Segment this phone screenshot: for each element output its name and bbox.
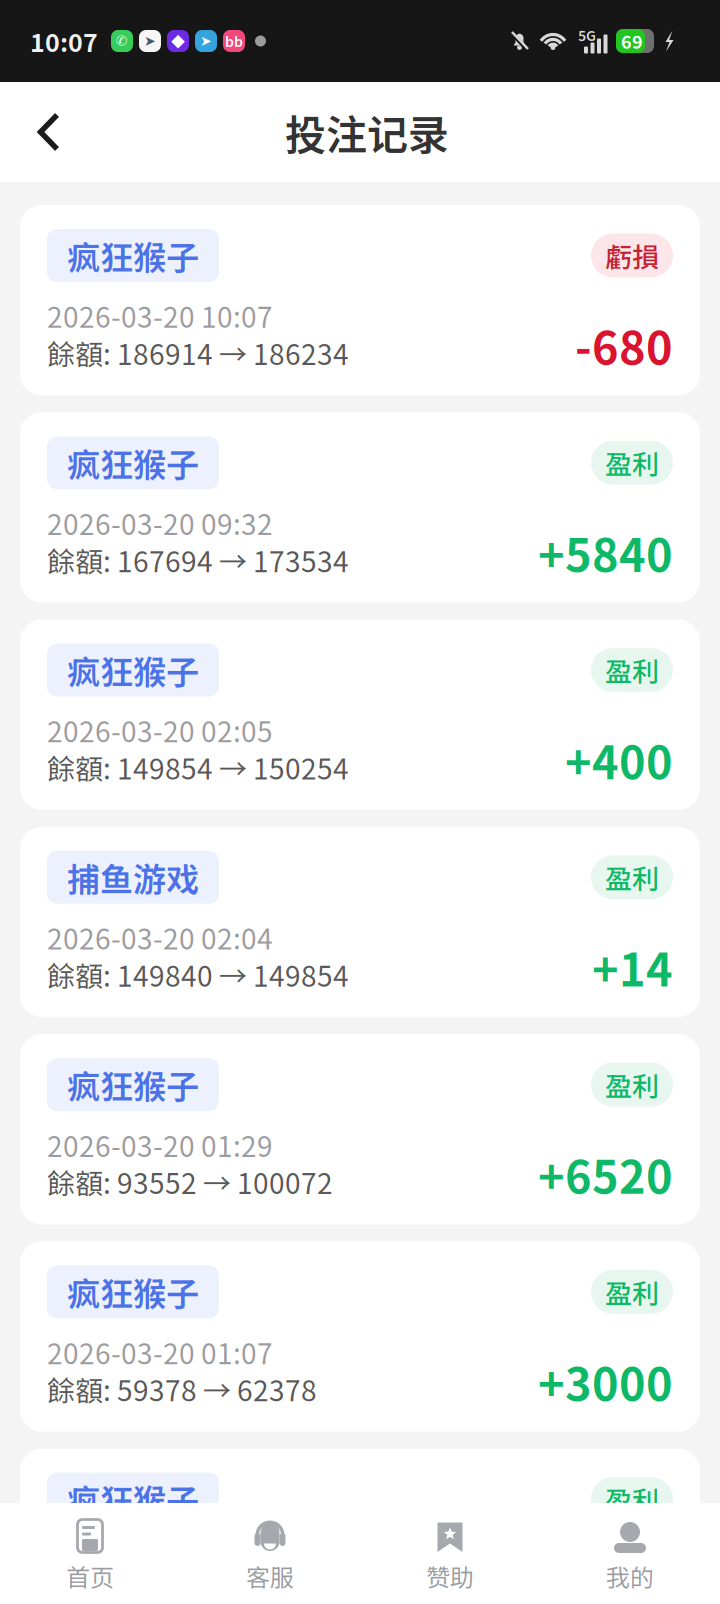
staticText: +3000 xyxy=(538,1361,673,1402)
staticText: 疯狂猴子 xyxy=(67,655,199,685)
staticText: 2026-03-20 02:04 xyxy=(47,925,273,950)
staticText: 疯狂猴子 xyxy=(67,1070,199,1099)
staticText: +400 xyxy=(565,739,673,780)
button[interactable]: 疯狂猴子 xyxy=(20,205,700,395)
button[interactable]: 返回 xyxy=(0,88,87,176)
staticText: +5840 xyxy=(538,532,673,573)
staticText: 69 xyxy=(621,33,643,49)
staticText: 盈利 xyxy=(605,865,659,889)
button[interactable]: 客服 xyxy=(180,1503,360,1604)
staticText: 首页 xyxy=(66,1565,114,1587)
staticText: 2026-03-20 10:07 xyxy=(47,303,273,328)
staticText: 我的 xyxy=(606,1565,654,1587)
staticText: ◆ xyxy=(171,35,185,47)
staticText: 餘額: 186914 → 186234 xyxy=(47,340,349,365)
button[interactable]: 疯狂猴子 xyxy=(20,1034,700,1224)
staticText: 盈利 xyxy=(605,1072,659,1097)
staticText: 5G xyxy=(578,28,596,41)
staticText: 餘額: 149854 → 150254 xyxy=(47,755,349,780)
staticText: 餘額: 59378 → 62378 xyxy=(47,1376,317,1402)
button[interactable]: 疯狂猴子 xyxy=(20,620,700,810)
button[interactable]: 疯狂猴子 xyxy=(20,1449,700,1604)
staticText: 餘額: 50000 → 59378 xyxy=(47,1584,317,1604)
staticText: 盈利 xyxy=(605,658,659,682)
staticText: 2026-03-20 00:45 xyxy=(47,1547,273,1572)
staticText: 疯狂猴子 xyxy=(67,1484,199,1514)
staticText: ➤ xyxy=(144,36,156,46)
staticText: 投注记录 xyxy=(285,114,449,150)
staticText: 盈利 xyxy=(605,451,659,475)
staticText: 餘額: 167694 → 173534 xyxy=(47,547,349,572)
staticText: 10:07 xyxy=(30,30,98,52)
staticText: 2026-03-20 01:29 xyxy=(47,1132,273,1157)
staticText: -680 xyxy=(575,325,673,365)
button[interactable]: 我的 xyxy=(540,1503,720,1604)
button[interactable]: 疯狂猴子 xyxy=(20,1241,700,1432)
staticText: 2026-03-20 09:32 xyxy=(47,510,273,535)
staticText: 疯狂猴子 xyxy=(67,241,199,270)
staticText: +6520 xyxy=(538,1154,673,1194)
staticText: 疯狂猴子 xyxy=(67,1277,199,1307)
button[interactable]: 首页 xyxy=(0,1503,180,1604)
staticText: +9378 xyxy=(538,1568,673,1604)
button[interactable]: 疯狂猴子 xyxy=(20,412,700,603)
staticText: ✆ xyxy=(116,36,128,46)
staticText: 疯狂猴子 xyxy=(67,448,199,478)
staticText: 2026-03-20 02:05 xyxy=(47,718,273,743)
staticText: +14 xyxy=(592,947,673,987)
staticText: 赞助 xyxy=(426,1565,474,1587)
staticText: 客服 xyxy=(246,1565,294,1587)
button[interactable]: 捕鱼游戏 xyxy=(20,827,700,1017)
staticText: bb xyxy=(225,35,243,47)
staticText: 2026-03-20 01:07 xyxy=(47,1339,273,1364)
staticText: 盈利 xyxy=(605,1487,659,1511)
staticText: 餘額: 93552 → 100072 xyxy=(47,1169,333,1194)
button[interactable]: 赞助 xyxy=(360,1503,540,1604)
staticText: ➤ xyxy=(200,36,212,46)
staticText: 虧損 xyxy=(605,243,659,268)
staticText: 餘額: 149840 → 149854 xyxy=(47,962,349,987)
staticText: 捕鱼游戏 xyxy=(67,862,199,892)
staticText: 盈利 xyxy=(605,1280,659,1304)
